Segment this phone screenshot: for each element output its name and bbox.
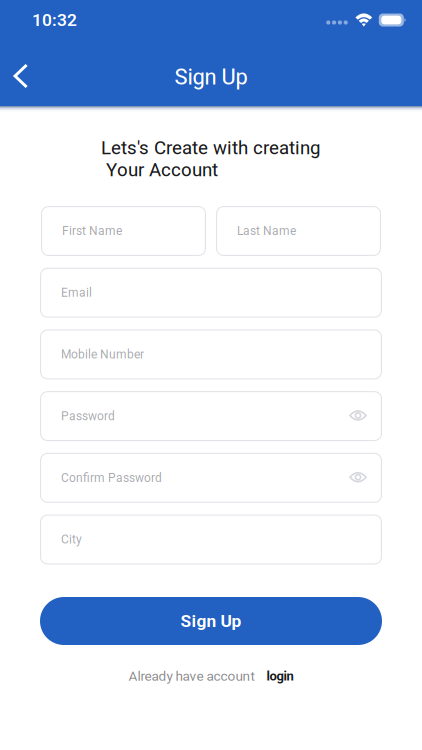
staticText: Already have account — [128, 668, 254, 684]
staticText: Last Name — [237, 224, 296, 238]
button[interactable]: Sign Up — [40, 597, 382, 645]
staticText: Password — [61, 409, 115, 423]
staticText: First Name — [62, 224, 122, 238]
button[interactable]: Back — [0, 48, 45, 98]
staticText: login — [266, 668, 293, 684]
staticText: Lets's Create with creating Your Account — [101, 137, 321, 181]
staticText: Email — [61, 286, 92, 300]
staticText: 10:32 — [32, 10, 77, 30]
staticText: Confirm Password — [61, 471, 162, 485]
staticText: Sign Up — [180, 611, 241, 631]
button[interactable]: login — [266, 668, 293, 684]
staticText: City — [61, 532, 82, 547]
staticText: Sign Up — [174, 64, 247, 90]
staticText: Mobile Number — [61, 347, 144, 361]
